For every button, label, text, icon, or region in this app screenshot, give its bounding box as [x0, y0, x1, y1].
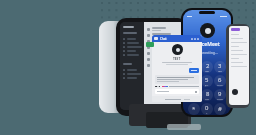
staticText: GHI	[192, 84, 196, 87]
staticText: 4	[192, 76, 196, 84]
button[interactable]: Window control	[197, 38, 199, 40]
button[interactable]: #	[214, 103, 226, 115]
button[interactable]: VoiceMeet	[181, 8, 233, 117]
button[interactable]: 0	[201, 103, 213, 115]
button[interactable]: 1	[188, 61, 200, 73]
staticText: #	[218, 105, 222, 113]
staticText: JKL	[205, 84, 209, 87]
button[interactable]	[116, 18, 188, 116]
button[interactable]: Window control	[191, 38, 193, 40]
button[interactable]: 3	[214, 61, 226, 73]
staticText: WXYZ	[217, 98, 223, 101]
staticText: 0	[205, 104, 209, 112]
button[interactable]: 6	[214, 75, 226, 87]
button[interactable]	[226, 24, 250, 108]
staticText: Connecting…	[196, 50, 218, 55]
button[interactable]	[99, 21, 125, 113]
button[interactable]: *	[188, 103, 200, 115]
button[interactable]: 5	[201, 75, 213, 87]
button[interactable]	[189, 68, 199, 73]
staticText: Chat	[160, 37, 167, 41]
staticText: 3	[218, 62, 222, 70]
staticText: DEF	[218, 70, 222, 73]
button[interactable]: 4	[188, 75, 200, 87]
staticText: TUV	[205, 98, 210, 101]
staticText: 7	[192, 90, 196, 98]
staticText: +	[206, 112, 208, 115]
button[interactable]: Window control	[194, 38, 196, 40]
button[interactable]: Send	[157, 89, 197, 94]
staticText: 5	[205, 76, 209, 84]
staticText: VoiceMeet	[194, 41, 220, 48]
staticText: 8	[206, 90, 210, 98]
staticText: 9	[218, 90, 222, 98]
staticText: *	[192, 105, 196, 113]
staticText: MNO	[217, 84, 223, 87]
button[interactable]	[146, 42, 154, 47]
button[interactable]: 2	[201, 61, 213, 73]
button[interactable]: Chat	[152, 35, 202, 102]
button[interactable]: 9	[214, 89, 226, 101]
staticText: 1	[192, 63, 196, 71]
staticText: ABC	[205, 70, 210, 73]
button[interactable]: 7	[188, 89, 200, 101]
staticText: 2	[206, 62, 210, 70]
staticText: TEST	[173, 57, 181, 61]
staticText: 6	[218, 76, 222, 84]
button[interactable]: 8	[201, 89, 213, 101]
